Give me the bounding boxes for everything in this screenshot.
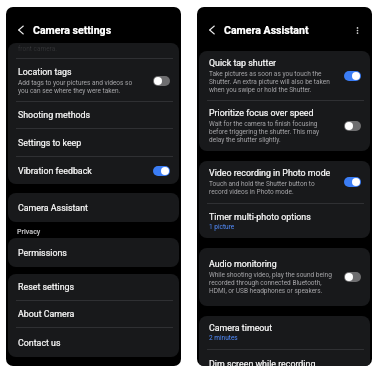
staticText: Location tags [18, 67, 72, 77]
button[interactable]: Video recording in Photo mode [199, 161, 370, 203]
button[interactable]: Reset settings [8, 274, 179, 300]
button[interactable]: Back [205, 23, 219, 37]
staticText: Video recording in Photo mode [209, 168, 331, 178]
button[interactable]: More options [350, 23, 364, 37]
staticText: Take pictures as soon as you touch the S… [209, 70, 332, 94]
button[interactable]: Quick tap shutter [199, 51, 370, 100]
button[interactable]: Permissions [8, 238, 179, 267]
button[interactable]: Dim screen while recording [199, 350, 370, 366]
staticText: 2 minutes [209, 334, 238, 342]
staticText: Settings to keep [18, 138, 82, 148]
staticText: About Camera [18, 309, 75, 319]
staticText: Contact us [18, 338, 61, 348]
button[interactable]: Audio monitoring [199, 248, 370, 306]
button[interactable]: Contact us [8, 328, 179, 357]
button[interactable]: Switch off [153, 76, 170, 86]
staticText: Vibration feedback [18, 166, 92, 176]
button[interactable]: Timer multi-photo options [199, 204, 370, 238]
staticText: Camera Assistant [18, 203, 88, 213]
staticText: Touch and hold the Shutter button to rec… [209, 180, 332, 196]
staticText: Shooting methods [18, 110, 91, 120]
staticText: Dim screen while recording [209, 359, 316, 366]
staticText: Privacy [17, 227, 41, 235]
button[interactable]: Vibration feedback [8, 157, 179, 184]
button[interactable]: Settings to keep [8, 129, 179, 156]
staticText: Camera settings [33, 24, 112, 36]
staticText: While shooting video, play the sound bei… [209, 271, 332, 295]
button[interactable]: Camera timeout [199, 316, 370, 349]
button[interactable]: About Camera [8, 301, 179, 327]
staticText: Camera timeout [209, 323, 273, 333]
button[interactable]: Camera Assistant [8, 193, 179, 222]
button[interactable]: Switch off [344, 121, 361, 131]
staticText: Timer multi-photo options [209, 212, 311, 222]
button[interactable]: Switch off [344, 272, 361, 282]
button[interactable]: Switch on [153, 166, 170, 176]
staticText: Permissions [18, 248, 67, 258]
button[interactable]: Switch on [344, 71, 361, 81]
button[interactable]: Prioritize focus over speed [199, 101, 370, 151]
button[interactable]: Shooting methods [8, 102, 179, 128]
button[interactable]: Switch on [344, 177, 361, 187]
staticText: Prioritize focus over speed [209, 108, 314, 118]
staticText: front camera. [18, 45, 57, 53]
button[interactable]: Back [14, 23, 28, 37]
staticText: Add tags to your pictures and videos so … [18, 79, 141, 95]
staticText: Audio monitoring [209, 259, 277, 269]
staticText: 1 picture [209, 223, 235, 231]
staticText: Wait for the camera to finish focusing b… [209, 120, 332, 144]
button[interactable]: Location tags [8, 59, 179, 101]
staticText: Camera Assistant [224, 24, 309, 36]
staticText: Quick tap shutter [209, 58, 277, 68]
staticText: Reset settings [18, 282, 75, 292]
